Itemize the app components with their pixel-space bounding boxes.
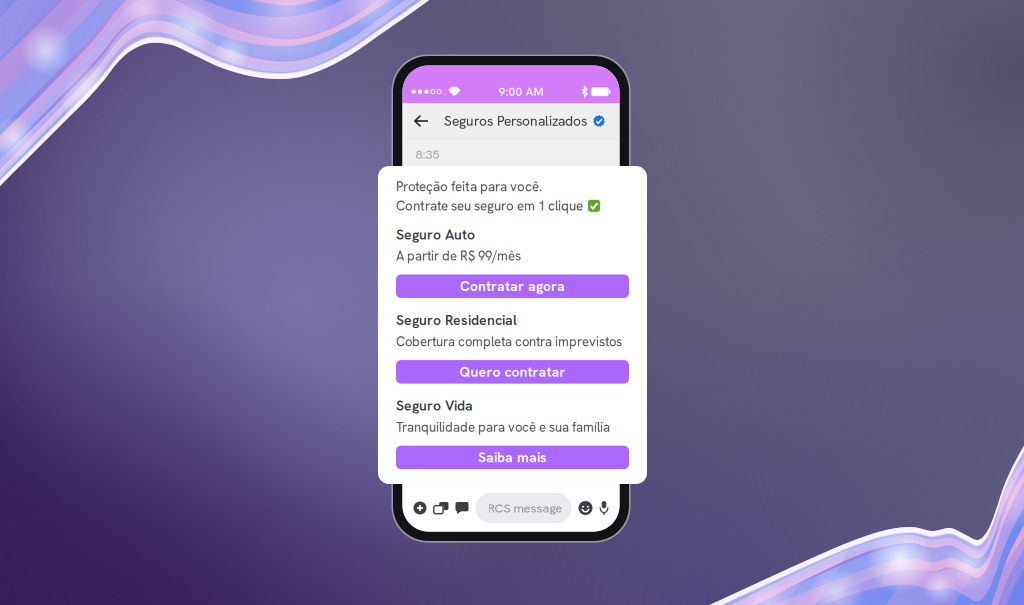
button[interactable]: Stickers	[455, 502, 468, 514]
staticText: Contratar agora	[460, 277, 565, 295]
staticText: Cobertura completa contra imprevistos	[396, 333, 622, 350]
button[interactable]: Gallery	[433, 502, 448, 514]
staticText: Seguro Vida	[396, 397, 473, 415]
staticText: Seguro Auto	[396, 225, 475, 244]
staticText: RCS message	[487, 500, 562, 516]
staticText: Quero contratar	[459, 363, 565, 381]
staticText: 8:35	[415, 146, 439, 163]
button[interactable]: Contratar agora	[396, 274, 629, 298]
staticText: A partir de R$ 99/mês	[396, 248, 521, 264]
staticText: Contrate seu seguro em 1 clique	[396, 197, 583, 214]
button[interactable]: Saiba mais	[396, 446, 629, 469]
staticText: Seguros Personalizados	[444, 112, 587, 130]
button[interactable]: Add attachment	[413, 501, 426, 514]
staticText: Tranquilidade para você e sua família	[396, 419, 610, 436]
button[interactable]: Quero contratar	[396, 360, 629, 384]
button[interactable]: More options	[613, 109, 633, 133]
staticText: Seguro Residencial	[396, 311, 517, 329]
button[interactable]: Emoji	[578, 501, 592, 515]
staticText: 9:00 AM	[498, 84, 543, 99]
staticText: Proteção feita para você.	[396, 178, 542, 195]
button[interactable]: Back	[406, 108, 436, 134]
button[interactable]: Voice message	[599, 501, 608, 515]
staticText: Saiba mais	[478, 448, 547, 466]
